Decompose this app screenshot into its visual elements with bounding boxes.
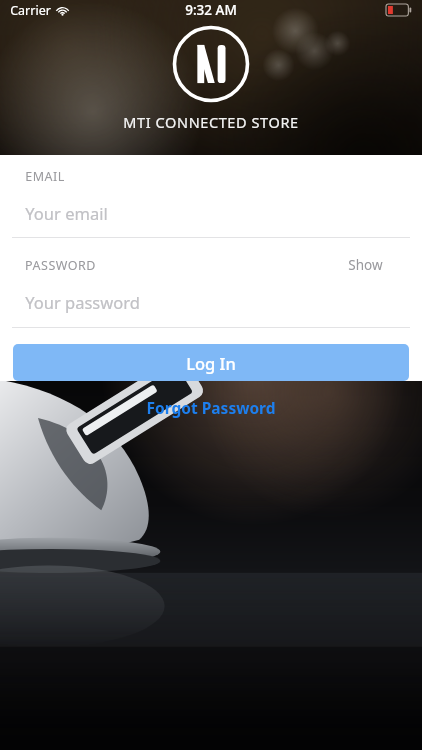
staticText: Your email (25, 202, 108, 224)
staticText: Your password (25, 291, 140, 313)
button[interactable]: Your email (0, 199, 422, 227)
button[interactable]: Log In (13, 344, 409, 381)
button[interactable]: Show (344, 252, 387, 278)
staticText: PASSWORD (25, 257, 96, 274)
staticText: Show (348, 256, 383, 274)
button[interactable]: Forgot Password (136, 394, 286, 421)
staticText: Forgot Password (146, 397, 276, 418)
button[interactable]: Your password (0, 288, 422, 316)
staticText: EMAIL (25, 168, 65, 185)
staticText: Carrier (10, 2, 51, 19)
staticText: Log In (186, 352, 236, 374)
staticText: MTI CONNECTED STORE (123, 112, 299, 132)
staticText: 9:32 AM (185, 1, 237, 19)
